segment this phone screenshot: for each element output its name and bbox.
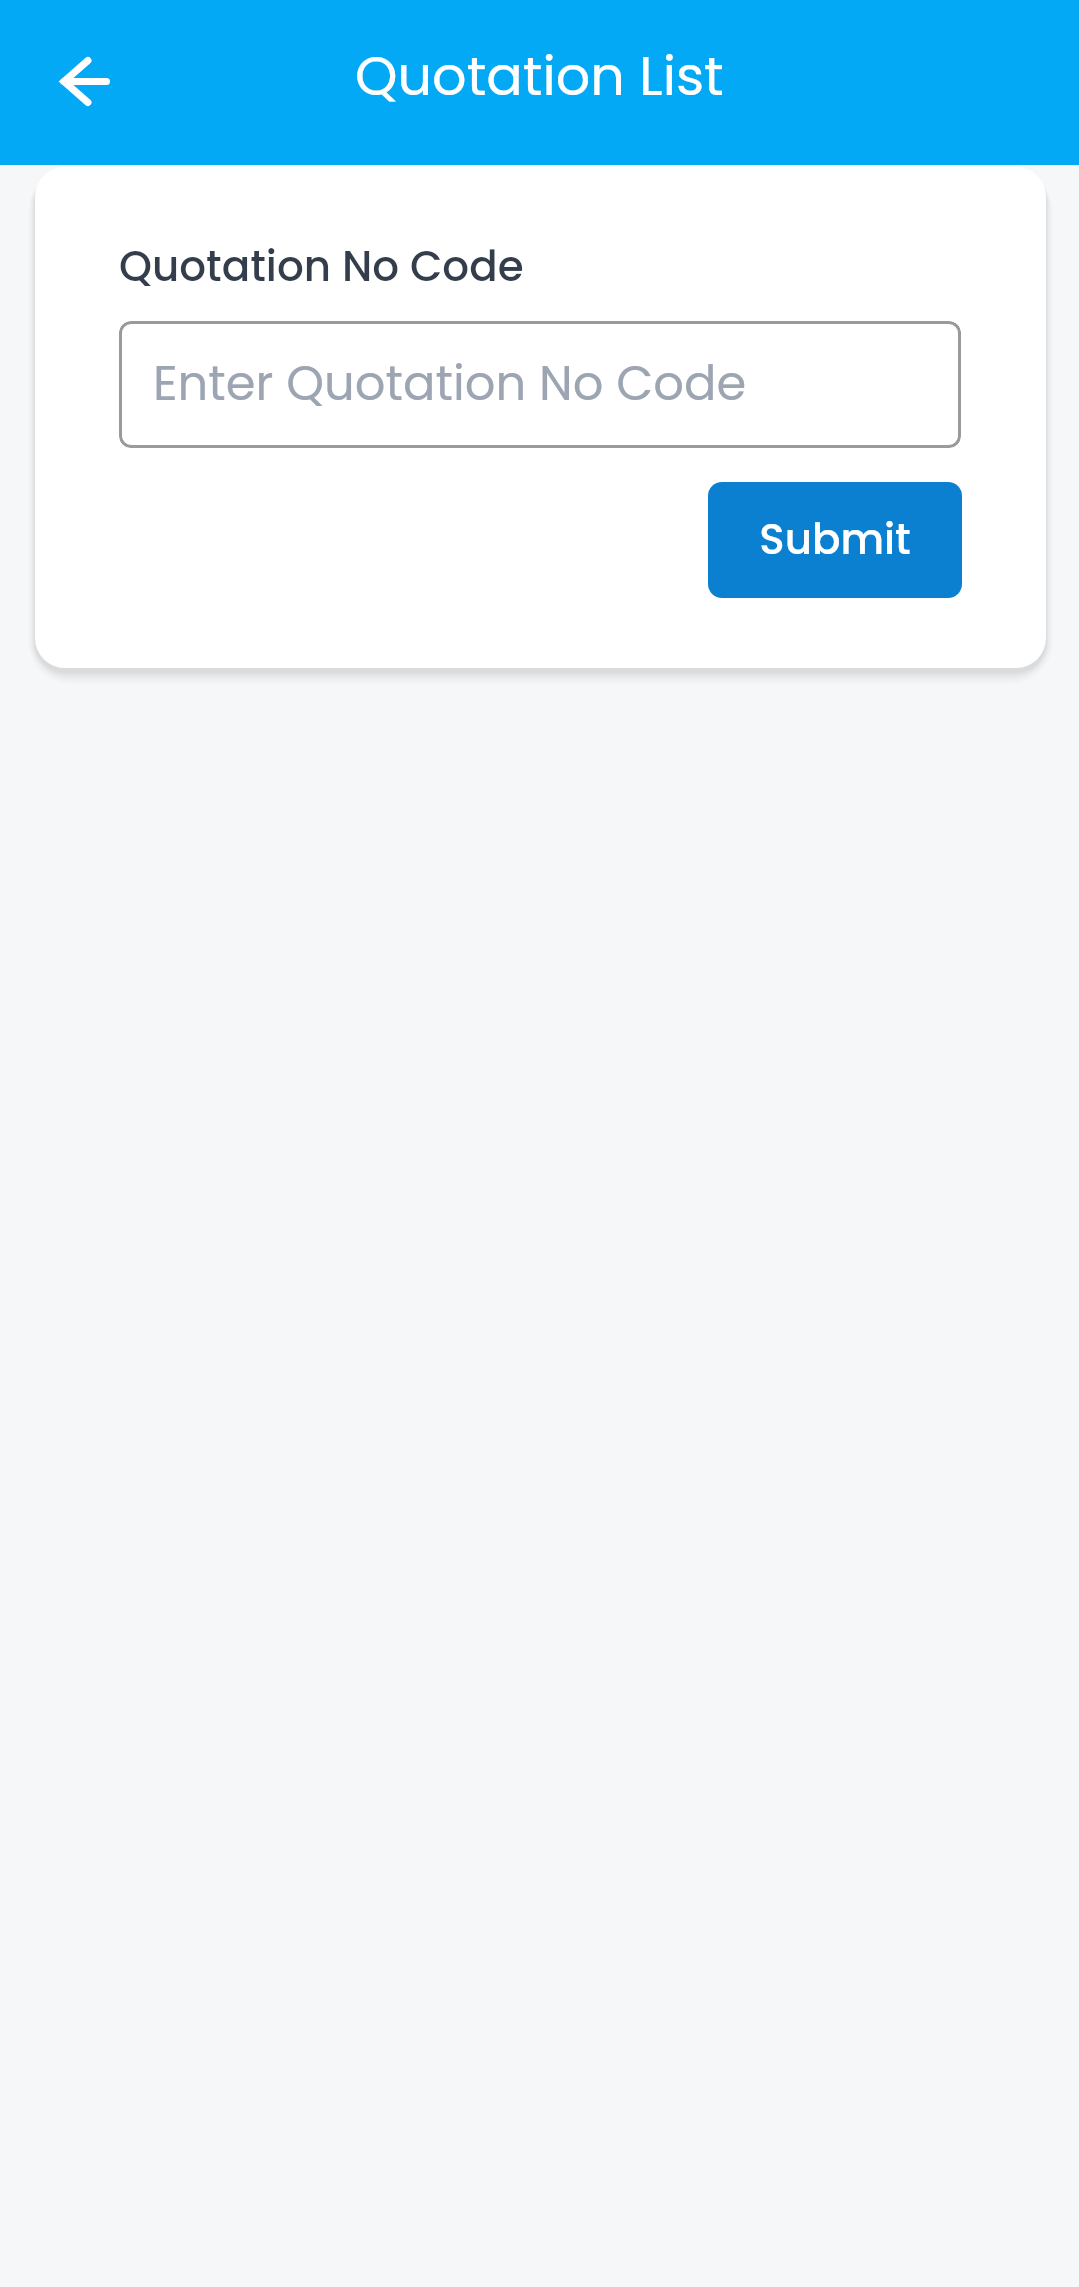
button[interactable]: Back (37, 33, 133, 129)
staticText: Quotation No Code (119, 237, 524, 296)
button[interactable]: Submit (708, 482, 962, 598)
staticText: Quotation List (355, 38, 724, 114)
staticText: Submit (759, 510, 911, 569)
button[interactable]: Enter Quotation No Code (119, 321, 961, 448)
staticText: Enter Quotation No Code (153, 350, 747, 417)
